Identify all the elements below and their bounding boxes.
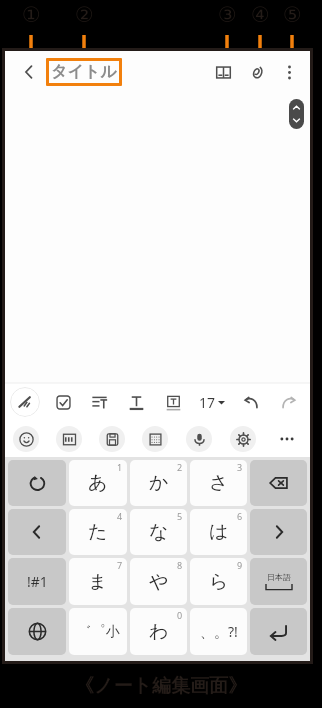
- staticText: 日本語: [267, 572, 291, 582]
- staticText: ③: [218, 3, 237, 25]
- staticText: な: [149, 520, 169, 544]
- staticText: さ: [209, 471, 229, 495]
- button[interactable]: Clipboard: [99, 426, 125, 452]
- staticText: 6: [237, 510, 243, 522]
- staticText: 2: [177, 461, 183, 473]
- button[interactable]: 3: [190, 460, 247, 506]
- staticText: あ: [88, 471, 108, 495]
- button[interactable]: 2: [130, 460, 187, 506]
- button[interactable]: タイトル: [46, 58, 122, 86]
- button[interactable]: 6: [190, 509, 247, 555]
- button[interactable]: !#1: [8, 558, 66, 605]
- button[interactable]: Keyboard: [142, 426, 168, 452]
- staticText: 《ノート編集画面》: [75, 674, 247, 698]
- staticText: 1: [117, 461, 123, 473]
- staticText: や: [149, 570, 169, 594]
- staticText: ②: [75, 3, 94, 25]
- button[interactable]: right: [250, 509, 307, 555]
- staticText: ④: [251, 3, 270, 25]
- button[interactable]: More options: [273, 51, 306, 93]
- button[interactable]: Text box: [160, 389, 186, 415]
- staticText: 4: [117, 510, 123, 522]
- button[interactable]: 17: [197, 393, 227, 412]
- button[interactable]: 4: [69, 509, 127, 555]
- staticText: ま: [88, 570, 108, 594]
- button[interactable]: Book view: [207, 51, 240, 93]
- button[interactable]: space: [250, 558, 307, 605]
- staticText: 5: [177, 510, 183, 522]
- button[interactable]: 0: [130, 608, 187, 655]
- button[interactable]: left: [8, 509, 66, 555]
- button[interactable]: Text format: [123, 389, 149, 415]
- button[interactable]: Redo: [275, 389, 301, 415]
- button[interactable]: Emoji: [13, 426, 39, 452]
- button[interactable]: Attach: [240, 51, 273, 93]
- button[interactable]: Back: [11, 51, 47, 93]
- staticText: !#1: [27, 572, 48, 591]
- button[interactable]: 、。?!: [190, 608, 247, 655]
- button[interactable]: 7: [69, 558, 127, 605]
- button[interactable]: Pen: [10, 387, 40, 417]
- staticText: 、。?!: [200, 622, 238, 641]
- staticText: は: [209, 520, 229, 544]
- button[interactable]: Settings: [230, 426, 256, 452]
- staticText: 17: [199, 393, 216, 412]
- button[interactable]: refresh: [8, 460, 66, 506]
- staticText: 9: [237, 559, 243, 571]
- staticText: 3: [237, 461, 243, 473]
- button[interactable]: 5: [130, 509, 187, 555]
- staticText: ゛゜小: [77, 623, 120, 641]
- button[interactable]: Checklist: [50, 389, 76, 415]
- button[interactable]: Undo: [238, 389, 264, 415]
- button[interactable]: 9: [190, 558, 247, 605]
- button[interactable]: Voice input: [186, 426, 212, 452]
- staticText: ら: [209, 570, 229, 594]
- button[interactable]: More: [274, 426, 300, 452]
- staticText: 7: [117, 559, 123, 571]
- button[interactable]: 8: [130, 558, 187, 605]
- button[interactable]: 1: [69, 460, 127, 506]
- button[interactable]: globe: [8, 608, 66, 655]
- staticText: か: [149, 471, 169, 495]
- staticText: タイトル: [51, 62, 117, 82]
- staticText: 8: [177, 559, 183, 571]
- button[interactable]: enter: [250, 608, 307, 655]
- button[interactable]: ゛゜小: [69, 608, 127, 655]
- button[interactable]: del: [250, 460, 307, 506]
- staticText: ⑤: [283, 3, 302, 25]
- button[interactable]: Paragraph: [86, 389, 112, 415]
- staticText: 0: [177, 609, 183, 621]
- staticText: た: [88, 520, 108, 544]
- staticText: ①: [22, 3, 41, 25]
- staticText: わ: [149, 620, 169, 644]
- button[interactable]: Scroll: [289, 99, 304, 129]
- button[interactable]: Stickers: [56, 426, 82, 452]
